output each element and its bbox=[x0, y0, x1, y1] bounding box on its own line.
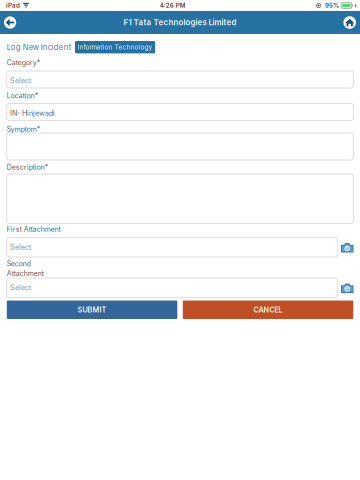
staticText: 4:26 PM bbox=[160, 2, 186, 9]
staticText: Category* bbox=[7, 58, 40, 67]
staticText: Log New Incident bbox=[7, 42, 72, 52]
button[interactable]: Back bbox=[0, 12, 20, 33]
staticText: Select bbox=[10, 243, 31, 251]
button[interactable]: Take photo for first attachment bbox=[341, 242, 353, 252]
button[interactable] bbox=[7, 174, 353, 223]
button[interactable]: IN- Hinjewadi bbox=[7, 103, 353, 120]
button[interactable]: Home bbox=[339, 12, 360, 33]
staticText: iPad bbox=[6, 2, 20, 9]
staticText: IN- Hinjewadi bbox=[10, 109, 55, 117]
staticText: F1 Tata Technologies Limited bbox=[123, 18, 236, 27]
staticText: SUBMIT bbox=[77, 305, 106, 314]
staticText: Description* bbox=[7, 163, 48, 171]
staticText: CANCEL bbox=[254, 305, 283, 314]
staticText: Attachment bbox=[7, 269, 44, 278]
staticText: 95% bbox=[325, 2, 339, 9]
staticText: Second bbox=[7, 259, 31, 268]
staticText: Location* bbox=[7, 91, 38, 100]
button[interactable]: Select bbox=[7, 278, 338, 297]
staticText: First Attachment bbox=[7, 225, 61, 233]
button[interactable]: Select bbox=[7, 71, 353, 88]
staticText: Information Technology bbox=[78, 43, 153, 51]
button[interactable]: CANCEL bbox=[183, 300, 353, 319]
button[interactable]: Take photo for second attachment bbox=[341, 283, 353, 293]
staticText: Select bbox=[10, 76, 31, 85]
staticText: Symptom* bbox=[7, 125, 40, 133]
button[interactable]: SUBMIT bbox=[7, 300, 177, 319]
staticText: Select bbox=[10, 283, 31, 292]
button[interactable] bbox=[7, 133, 353, 160]
button[interactable]: Select bbox=[7, 237, 338, 257]
